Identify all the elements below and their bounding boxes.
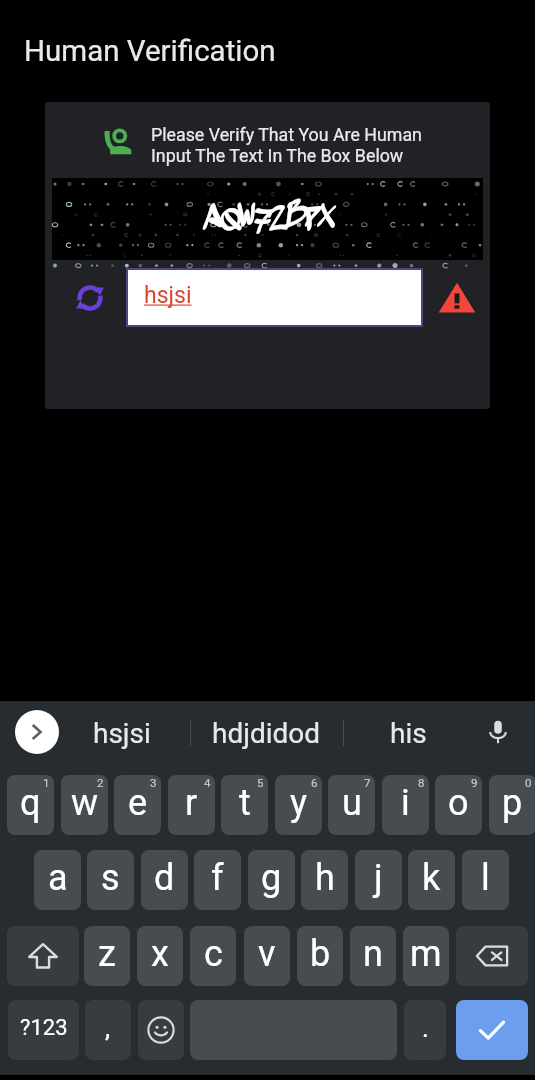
button[interactable]: Emoji [138, 1000, 184, 1060]
button[interactable]: h [301, 850, 348, 910]
button[interactable]: Refresh captcha [72, 280, 108, 316]
staticText: x [151, 933, 169, 975]
button[interactable]: k [408, 850, 455, 910]
staticText: Please Verify That You Are Human [151, 124, 422, 145]
staticText: 7 [364, 776, 371, 789]
staticText: c [204, 933, 223, 975]
button[interactable]: hsjsi [82, 706, 162, 760]
staticText: h [315, 857, 335, 899]
staticText: v [258, 933, 276, 975]
staticText: w [71, 782, 99, 824]
staticText: g [261, 857, 282, 899]
staticText: 8 [418, 776, 425, 789]
staticText: hsjsi [93, 717, 151, 750]
button[interactable]: x [137, 926, 183, 986]
staticText: l [481, 857, 490, 899]
staticText: m [410, 933, 442, 975]
staticText: a [48, 857, 68, 899]
staticText: f [211, 857, 224, 899]
button[interactable]: f [194, 850, 241, 910]
staticText: Q [219, 201, 243, 244]
button[interactable]: hsjsi [128, 270, 421, 325]
button[interactable]: ?123 [8, 1000, 79, 1060]
button[interactable]: m [403, 926, 449, 986]
staticText: P [301, 200, 325, 243]
button[interactable]: his [377, 706, 439, 760]
button[interactable]: u [328, 775, 375, 835]
button[interactable]: Voice input [481, 715, 515, 749]
button[interactable]: Backspace [456, 926, 528, 986]
staticText: A [199, 198, 225, 241]
staticText: r [185, 782, 198, 824]
staticText: 1 [43, 776, 50, 789]
button[interactable]: More suggestions [15, 710, 59, 754]
button[interactable]: t [221, 775, 268, 835]
staticText: W [237, 196, 257, 239]
button[interactable]: e [114, 775, 161, 835]
button[interactable]: n [350, 926, 396, 986]
button[interactable]: r [168, 775, 215, 835]
button[interactable]: j [355, 850, 402, 910]
staticText: Human Verification [24, 34, 276, 69]
button[interactable]: . [404, 1000, 446, 1060]
button[interactable]: z [84, 926, 130, 986]
staticText: e [128, 782, 148, 824]
staticText: b [310, 933, 331, 975]
button[interactable]: Enter [456, 1000, 528, 1060]
button[interactable]: c [190, 926, 236, 986]
button[interactable]: y [275, 775, 322, 835]
staticText: n [363, 933, 383, 975]
staticText: k [422, 857, 441, 899]
staticText: 3 [150, 776, 157, 789]
button[interactable]: a [34, 850, 81, 910]
staticText: 7 [250, 202, 275, 245]
button[interactable]: , [85, 1000, 131, 1060]
staticText: Input The Text In The Box Below [151, 145, 404, 166]
button[interactable]: Shift [7, 926, 79, 986]
staticText: 2 [266, 199, 290, 242]
staticText: 5 [257, 776, 264, 789]
button[interactable]: hdjdidod [201, 706, 331, 760]
button[interactable]: d [141, 850, 188, 910]
button[interactable]: i [382, 775, 429, 835]
staticText: 9 [471, 776, 478, 789]
button[interactable]: q [7, 775, 54, 835]
staticText: 6 [311, 776, 318, 789]
staticText: q [20, 782, 41, 824]
staticText: p [502, 782, 523, 824]
staticText: hdjdidod [212, 717, 321, 750]
staticText: his [390, 717, 427, 750]
staticText: 4 [204, 776, 211, 789]
button[interactable]: w [61, 775, 108, 835]
button[interactable]: o [435, 775, 482, 835]
button[interactable]: v [244, 926, 290, 986]
staticText: z [98, 933, 116, 975]
staticText: . [422, 1013, 429, 1043]
staticText: u [342, 782, 362, 824]
button[interactable]: l [462, 850, 509, 910]
staticText: o [448, 782, 469, 824]
staticText: t [239, 782, 251, 824]
staticText: X [316, 197, 338, 240]
staticText: B [284, 195, 308, 238]
button[interactable]: p [489, 775, 535, 835]
staticText: 2 [97, 776, 104, 789]
staticText: hsjsi [144, 282, 192, 309]
staticText: j [374, 857, 383, 899]
button[interactable]: s [87, 850, 134, 910]
staticText: y [290, 782, 308, 824]
staticText: d [154, 857, 175, 899]
staticText: 0 [525, 776, 532, 789]
staticText: ?123 [20, 1015, 68, 1041]
staticText: , [105, 1013, 111, 1043]
button[interactable]: g [248, 850, 295, 910]
button[interactable]: b [297, 926, 343, 986]
staticText: s [101, 857, 120, 899]
staticText: i [401, 782, 410, 824]
